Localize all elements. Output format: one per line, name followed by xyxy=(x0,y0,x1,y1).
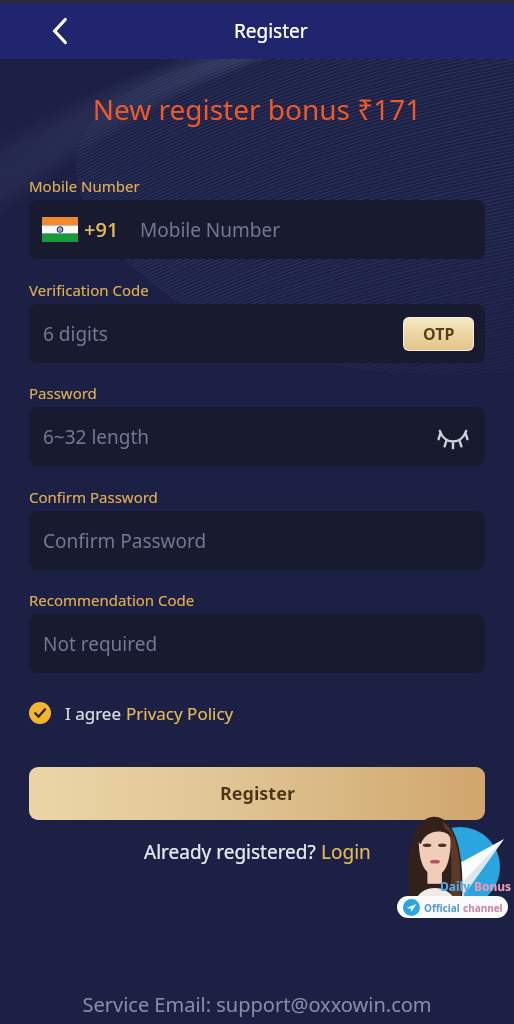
button[interactable]: Confirm Password xyxy=(29,511,485,570)
staticText: Verification Code xyxy=(29,280,149,300)
button[interactable]: Not required xyxy=(29,614,485,673)
button[interactable]: I agree xyxy=(29,701,234,725)
staticText: Service Email: support@oxxowin.com xyxy=(0,991,514,1018)
staticText: channel xyxy=(463,901,503,915)
staticText: Confirm Password xyxy=(29,487,158,507)
staticText: 6 digits xyxy=(43,321,108,347)
button[interactable]: Back xyxy=(36,7,84,55)
staticText: New register bonus ₹171 xyxy=(0,90,514,128)
staticText: Register xyxy=(220,781,295,806)
staticText: OTP xyxy=(423,323,455,345)
button[interactable]: Show password xyxy=(437,421,469,453)
staticText: Already registered? xyxy=(144,839,321,865)
staticText: I agree xyxy=(65,702,126,725)
staticText: Not required xyxy=(43,631,158,657)
staticText: Daily xyxy=(440,878,474,894)
button[interactable]: +91 xyxy=(29,200,485,259)
staticText: Confirm Password xyxy=(43,528,207,554)
staticText: Recommendation Code xyxy=(29,590,195,610)
button[interactable]: Telegram official channel xyxy=(396,815,514,923)
button[interactable]: 6 digits xyxy=(29,304,485,363)
staticText: +91 xyxy=(84,216,119,243)
button[interactable]: 6~32 length xyxy=(29,407,485,466)
staticText: Privacy Policy xyxy=(126,702,234,725)
button[interactable]: Login xyxy=(321,839,371,865)
staticText: Bonus xyxy=(474,878,512,894)
staticText: Official xyxy=(424,901,463,915)
button[interactable]: OTP xyxy=(404,318,473,350)
staticText: Mobile Number xyxy=(140,217,281,243)
staticText: Mobile Number xyxy=(29,176,140,196)
staticText: 6~32 length xyxy=(43,424,150,450)
staticText: Password xyxy=(29,383,97,403)
button[interactable]: Register xyxy=(29,767,485,820)
staticText: Register xyxy=(234,18,308,44)
